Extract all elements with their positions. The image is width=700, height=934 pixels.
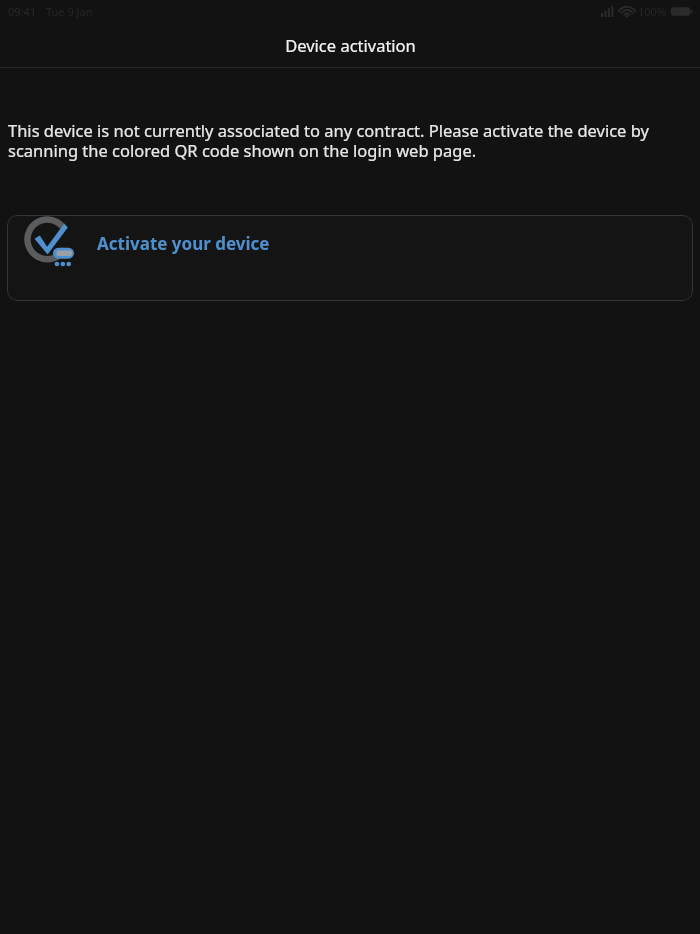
- staticText: Tue 9 Jan: [46, 4, 93, 19]
- staticText: 09:41: [8, 4, 37, 19]
- button[interactable]: Activate your device: [7, 215, 693, 301]
- staticText: Device activation: [285, 34, 416, 56]
- staticText: 100%: [638, 4, 667, 19]
- staticText: Activate your device: [97, 232, 270, 255]
- staticText: This device is not currently associated …: [8, 119, 686, 162]
